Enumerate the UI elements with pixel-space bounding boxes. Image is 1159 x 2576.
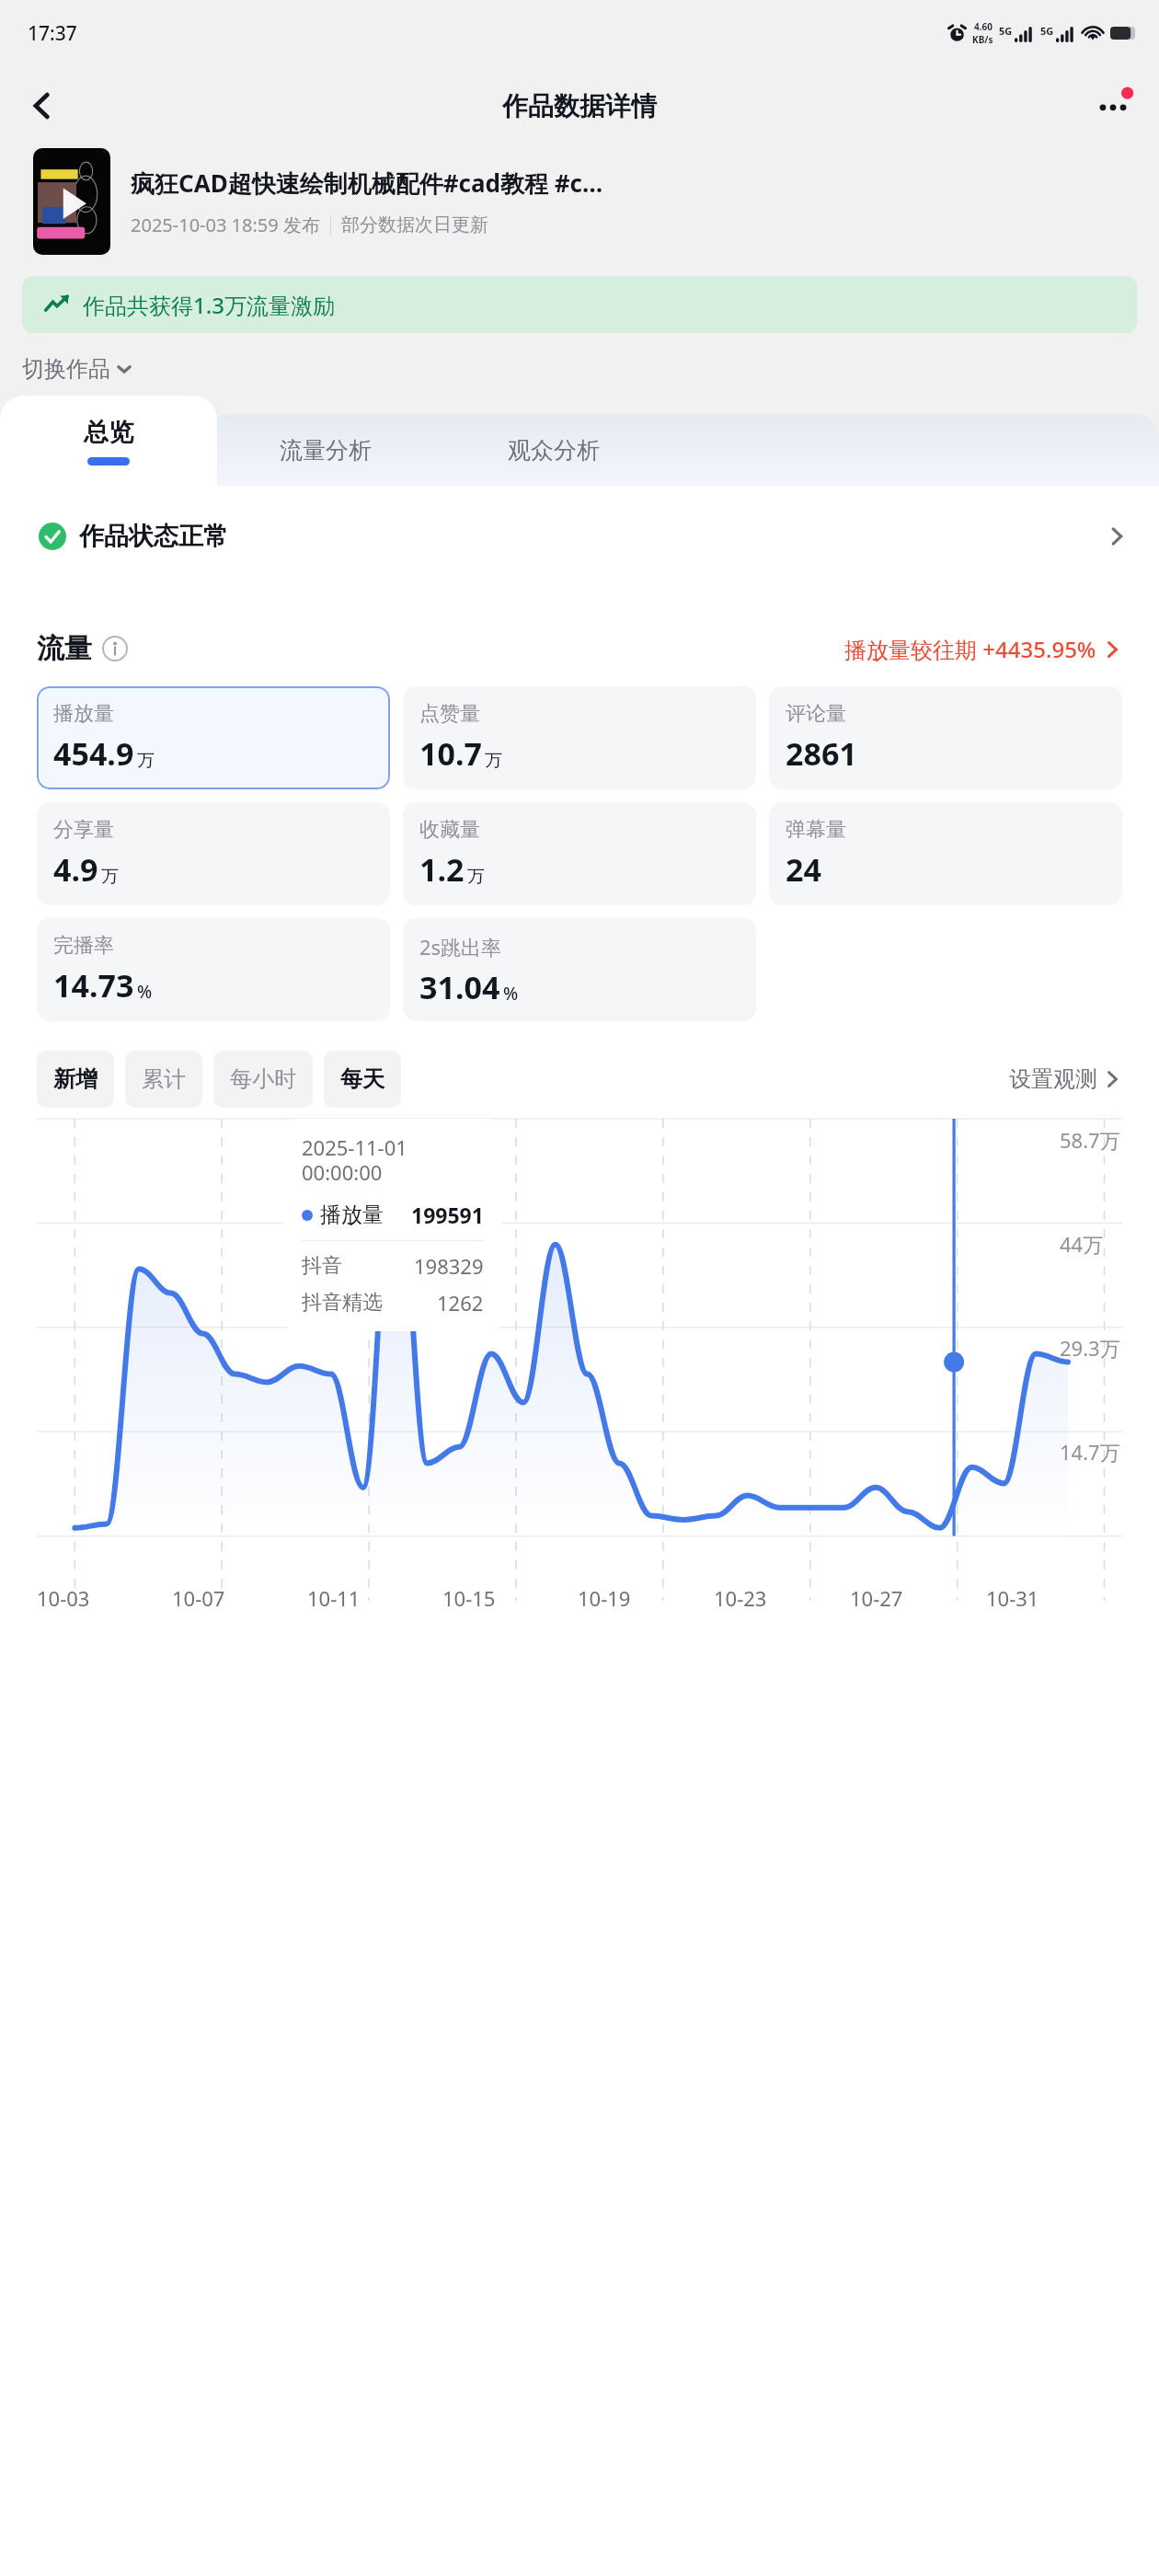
button[interactable]: 累计 bbox=[125, 1051, 202, 1108]
button[interactable]: 完播率 bbox=[37, 918, 390, 1021]
staticText: 抖音 bbox=[302, 1253, 342, 1279]
staticText: 切换作品 bbox=[22, 355, 110, 383]
staticText: KB/s bbox=[972, 33, 993, 46]
staticText: 199591 bbox=[411, 1201, 484, 1229]
staticText: 2s跳出率 bbox=[419, 933, 502, 960]
staticText: 5G bbox=[1040, 24, 1054, 38]
staticText: 4.9 bbox=[53, 848, 98, 891]
button[interactable]: 流量分析 bbox=[217, 414, 434, 486]
staticText: 评论量 bbox=[786, 701, 846, 727]
staticText: 抖音精选 bbox=[302, 1290, 383, 1316]
staticText: 29.3万 bbox=[1060, 1334, 1120, 1362]
staticText: 10-03 bbox=[37, 1584, 90, 1612]
staticText: 14.7万 bbox=[1060, 1438, 1120, 1466]
button[interactable]: More options bbox=[1084, 76, 1142, 135]
staticText: 累计 bbox=[142, 1065, 186, 1093]
staticText: 198329 bbox=[414, 1252, 484, 1280]
staticText: 2025-11-01 00:00:00 bbox=[302, 1133, 484, 1186]
staticText: 10-15 bbox=[442, 1584, 496, 1612]
staticText: 2025-10-03 18:59 发布 bbox=[131, 213, 320, 237]
staticText: 部分数据次日更新 bbox=[341, 213, 488, 236]
button[interactable]: 作品共获得1.3万流量激励 bbox=[22, 276, 1137, 333]
staticText: 17:37 bbox=[28, 20, 77, 47]
staticText: % bbox=[137, 980, 153, 1004]
button[interactable]: 2s跳出率 bbox=[403, 918, 756, 1021]
staticText: 作品共获得1.3万流量激励 bbox=[83, 290, 335, 320]
staticText: % bbox=[503, 982, 519, 1006]
staticText: 新增 bbox=[53, 1065, 98, 1093]
staticText: 万 bbox=[467, 866, 485, 888]
button[interactable]: 评论量 bbox=[769, 686, 1122, 789]
staticText: 10-19 bbox=[578, 1584, 631, 1612]
staticText: 10-23 bbox=[714, 1584, 767, 1612]
button[interactable]: 新增 bbox=[37, 1051, 114, 1108]
staticText: 播放量 bbox=[53, 701, 114, 727]
staticText: 2861 bbox=[786, 732, 857, 775]
button[interactable]: 疯狂CAD超快速绘制机械配件#cad教程 #c… bbox=[33, 145, 1139, 258]
staticText: 10.7 bbox=[419, 732, 482, 775]
staticText: 14.73 bbox=[53, 964, 134, 1006]
staticText: 每小时 bbox=[230, 1065, 296, 1093]
button[interactable]: 收藏量 bbox=[403, 802, 756, 905]
staticText: 总览 bbox=[84, 417, 133, 448]
button[interactable]: 弹幕量 bbox=[769, 802, 1122, 905]
button[interactable]: Back bbox=[13, 76, 72, 135]
staticText: 5G bbox=[999, 24, 1013, 38]
staticText: 收藏量 bbox=[419, 817, 480, 843]
button[interactable]: 切换作品 bbox=[22, 355, 134, 383]
staticText: 1.2 bbox=[419, 848, 465, 891]
button[interactable]: 总览 bbox=[0, 396, 217, 486]
staticText: 疯狂CAD超快速绘制机械配件#cad教程 #c… bbox=[131, 167, 603, 200]
staticText: 4.60 bbox=[974, 20, 993, 33]
staticText: 每天 bbox=[340, 1065, 384, 1093]
staticText: 10-27 bbox=[850, 1584, 903, 1612]
staticText: 万 bbox=[485, 750, 502, 772]
staticText: 44万 bbox=[1060, 1230, 1104, 1258]
staticText: 流量分析 bbox=[280, 436, 372, 465]
staticText: 1262 bbox=[437, 1289, 484, 1317]
button[interactable]: 播放量 bbox=[37, 686, 390, 789]
button[interactable]: 作品状态正常 bbox=[0, 486, 1159, 587]
staticText: 10-31 bbox=[986, 1584, 1039, 1612]
button[interactable]: 分享量 bbox=[37, 802, 390, 905]
button[interactable]: 设置观测 bbox=[1009, 1065, 1122, 1093]
staticText: 点赞量 bbox=[419, 701, 480, 727]
staticText: 播放量 bbox=[320, 1202, 384, 1228]
staticText: 24 bbox=[786, 848, 821, 891]
staticText: 作品数据详情 bbox=[502, 90, 657, 122]
staticText: 10-07 bbox=[172, 1584, 225, 1612]
staticText: 作品状态正常 bbox=[79, 521, 228, 552]
button[interactable]: 播放量较往期 +4435.95% bbox=[844, 634, 1122, 664]
button[interactable]: 点赞量 bbox=[403, 686, 756, 789]
staticText: 万 bbox=[137, 750, 155, 772]
staticText: 31.04 bbox=[419, 966, 500, 1008]
staticText: 分享量 bbox=[53, 817, 114, 843]
staticText: 设置观测 bbox=[1009, 1065, 1097, 1093]
staticText: 万 bbox=[101, 866, 119, 888]
button[interactable]: 每天 bbox=[324, 1051, 401, 1108]
staticText: 流量 bbox=[37, 631, 92, 666]
staticText: 454.9 bbox=[53, 732, 134, 775]
staticText: 完播率 bbox=[53, 933, 114, 959]
button[interactable]: 观众分析 bbox=[434, 414, 673, 486]
staticText: 10-11 bbox=[307, 1584, 361, 1612]
button[interactable]: Info bbox=[101, 635, 129, 662]
staticText: 58.7万 bbox=[1060, 1126, 1120, 1154]
staticText: 弹幕量 bbox=[786, 817, 846, 843]
button[interactable]: 每小时 bbox=[213, 1051, 313, 1108]
staticText: 播放量较往期 +4435.95% bbox=[844, 634, 1096, 664]
staticText: 观众分析 bbox=[508, 436, 600, 465]
